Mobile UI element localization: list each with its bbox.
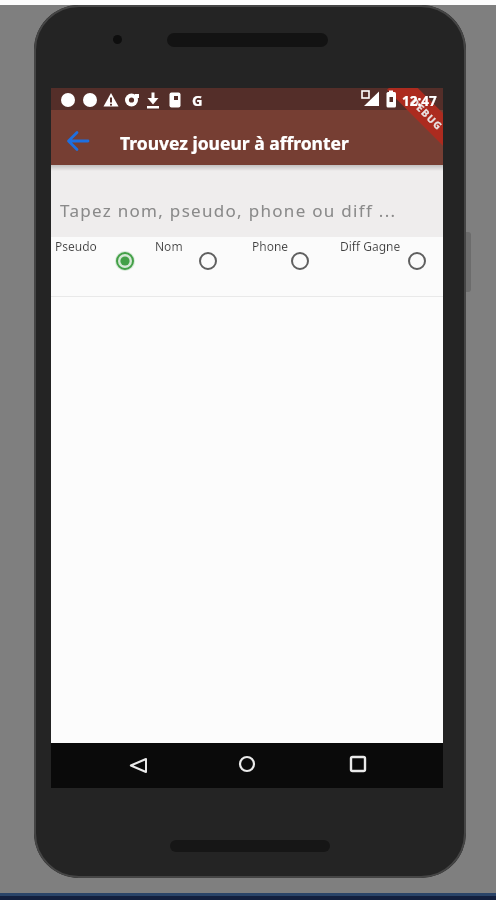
staticText: DEBUG [408,95,443,134]
staticText: Phone [252,238,289,254]
button[interactable] [113,249,137,273]
button[interactable] [196,249,220,273]
button[interactable]: Diff Gagne [338,237,399,253]
button[interactable]: Phone [250,237,287,253]
staticText: Diff Gagne [340,238,401,254]
staticText: Trouvez joueur à affronter [120,131,349,155]
staticText: 12:47 [402,92,437,110]
staticText: G [192,90,203,110]
button[interactable] [60,123,96,159]
button[interactable] [232,749,262,779]
staticText: Pseudo [55,238,97,254]
button[interactable] [405,249,429,273]
button[interactable] [288,249,312,273]
button[interactable]: Tapez nom, pseudo, phone ou diff ... [51,165,443,237]
button[interactable]: Pseudo [53,237,95,253]
button[interactable]: Nom [153,237,181,253]
button[interactable] [123,750,153,780]
button[interactable] [343,749,373,779]
staticText: Nom [155,238,183,254]
staticText: Tapez nom, pseudo, phone ou diff ... [60,199,397,222]
